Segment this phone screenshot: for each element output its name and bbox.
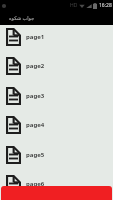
staticText: جواب شکوه	[9, 15, 35, 22]
other: Notification	[1, 3, 7, 9]
button[interactable]: page5	[0, 140, 113, 170]
button[interactable]: page1	[0, 22, 113, 52]
staticText: page5	[26, 151, 45, 159]
staticText: page1	[26, 33, 45, 41]
staticText: page2	[26, 62, 45, 70]
staticText: page4	[26, 121, 45, 129]
button[interactable]: page6	[0, 169, 113, 199]
button[interactable]: page4	[0, 110, 113, 140]
staticText: HD	[70, 2, 78, 9]
button[interactable]: Advertisement banner	[1, 186, 112, 200]
staticText: page3	[26, 92, 45, 100]
staticText: page6	[26, 180, 45, 188]
button[interactable]: page2	[0, 51, 113, 81]
staticText: 16:28	[99, 2, 112, 9]
button[interactable]: page3	[0, 81, 113, 111]
